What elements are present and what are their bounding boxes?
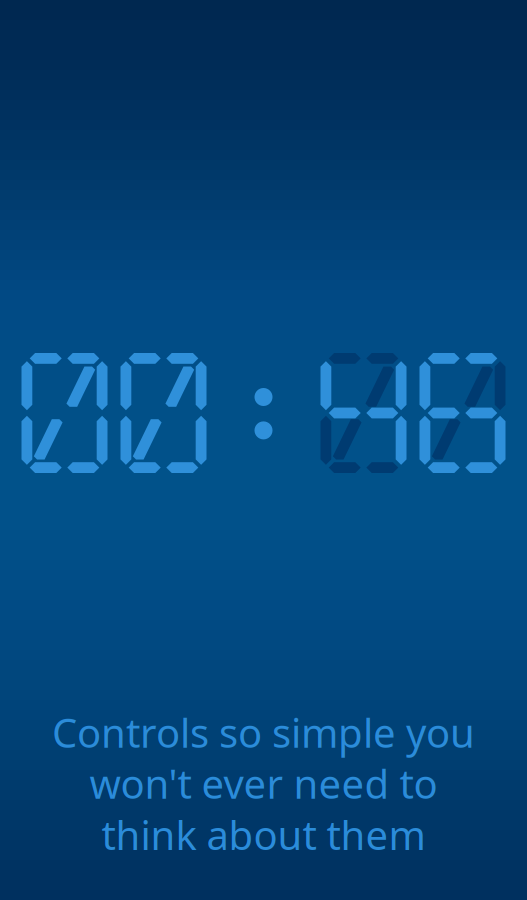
staticText: think about them — [101, 808, 425, 861]
staticText: won't ever need to — [89, 757, 437, 810]
staticText: Controls so simple you — [52, 706, 475, 759]
